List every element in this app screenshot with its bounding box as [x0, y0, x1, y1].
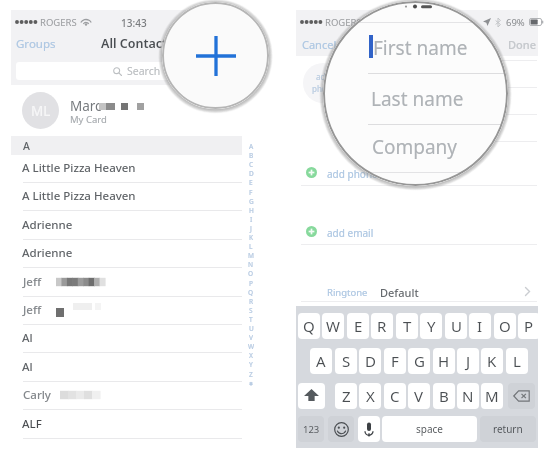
staticText: return	[493, 422, 523, 436]
button[interactable]	[356, 87, 537, 114]
staticText: O	[499, 316, 511, 336]
button[interactable]: H	[433, 348, 455, 374]
staticText: A Little Pizza Heaven	[22, 160, 136, 176]
staticText: L	[249, 242, 253, 251]
button[interactable]: N	[457, 383, 479, 409]
button[interactable]: Alphabet index	[245, 142, 257, 392]
staticText: M	[485, 386, 499, 406]
staticText: Al	[22, 330, 33, 346]
button[interactable]: Q	[298, 313, 320, 339]
staticText: A	[249, 142, 254, 151]
button[interactable]: S	[335, 348, 357, 374]
button[interactable]	[356, 114, 537, 141]
button[interactable]: C	[384, 383, 406, 409]
button[interactable]: U	[445, 313, 467, 339]
staticText: Company	[372, 134, 458, 160]
button[interactable]: Dictation	[358, 416, 380, 442]
button[interactable]: Done	[508, 37, 536, 52]
staticText: O	[248, 269, 254, 278]
button[interactable]: D	[359, 348, 381, 374]
staticText: Default	[380, 285, 419, 300]
button[interactable]: P	[518, 313, 540, 339]
staticText: I	[250, 215, 253, 224]
button[interactable]: 123	[298, 416, 324, 442]
staticText: ALF	[22, 416, 42, 432]
button[interactable]: Jeff	[11, 269, 242, 297]
button[interactable]: return	[480, 416, 536, 442]
staticText: add email	[327, 226, 374, 240]
staticText: J	[250, 224, 252, 233]
button[interactable]: E	[347, 313, 369, 339]
staticText: K	[249, 233, 254, 242]
button[interactable]: X	[359, 383, 381, 409]
button[interactable]: L	[506, 348, 528, 374]
staticText: D	[365, 351, 376, 371]
button[interactable]: Emoji	[328, 416, 354, 442]
button[interactable]: Groups	[16, 36, 56, 52]
staticText: 13:43	[121, 16, 147, 30]
staticText: Q	[303, 316, 315, 336]
button[interactable]: T	[396, 313, 418, 339]
button[interactable]: M	[481, 383, 503, 409]
button[interactable]: Y	[420, 313, 442, 339]
button[interactable]: A Little Pizza Heaven	[11, 183, 242, 211]
button[interactable]: add phone	[296, 163, 538, 185]
staticText: D	[249, 169, 254, 178]
staticText: U	[451, 316, 462, 336]
button[interactable]: Cancel	[302, 37, 337, 52]
button[interactable]: F	[384, 348, 406, 374]
staticText: Marc	[70, 97, 102, 115]
staticText: N	[248, 260, 254, 269]
button[interactable]: A	[310, 348, 332, 374]
staticText: All Contacts	[101, 35, 174, 52]
button[interactable]: add email	[296, 222, 538, 244]
staticText: R	[377, 316, 387, 336]
button[interactable]: Jeff	[11, 297, 242, 325]
button[interactable]: Ringtone	[296, 282, 538, 301]
button[interactable]: Z	[335, 383, 357, 409]
staticText: B	[439, 386, 449, 406]
button[interactable]: add	[303, 63, 343, 103]
button[interactable]: J	[457, 348, 479, 374]
staticText: 69%	[506, 16, 525, 28]
button[interactable]: Al	[11, 354, 242, 382]
staticText: R	[249, 297, 254, 306]
button[interactable]: Search	[16, 62, 237, 80]
button[interactable]	[356, 60, 537, 87]
button[interactable]: V	[408, 383, 430, 409]
staticText: V	[414, 386, 424, 406]
button[interactable]: Carly	[11, 382, 242, 410]
staticText: W	[326, 316, 340, 336]
button[interactable]: G	[408, 348, 430, 374]
staticText: Search	[127, 64, 161, 78]
button[interactable]: Al	[11, 325, 242, 353]
button[interactable]: I	[469, 313, 491, 339]
staticText: Z	[249, 370, 253, 379]
staticText: W	[248, 342, 255, 351]
button[interactable]: Backspace	[508, 383, 535, 409]
staticText: S	[249, 306, 253, 315]
button[interactable]: Adrienne	[11, 240, 242, 268]
button[interactable]: K	[481, 348, 503, 374]
button[interactable]: ML	[11, 85, 242, 136]
staticText: ROGERS	[40, 16, 77, 28]
button[interactable]: W	[322, 313, 344, 339]
button[interactable]: O	[494, 313, 516, 339]
button[interactable]: ALF	[11, 411, 242, 439]
button[interactable]: A Little Pizza Heaven	[11, 155, 242, 183]
button[interactable]: B	[433, 383, 455, 409]
staticText: L	[513, 351, 521, 371]
button[interactable]: space	[382, 416, 477, 442]
button[interactable]: Shift	[298, 383, 325, 409]
staticText: G	[249, 197, 254, 206]
staticText: ROGERS	[325, 16, 362, 28]
button[interactable]: R	[371, 313, 393, 339]
button[interactable]: Adrienne	[11, 212, 242, 240]
staticText: C	[390, 386, 400, 406]
other: Choose ringtone	[525, 287, 530, 296]
staticText: Y	[427, 316, 436, 336]
staticText: A	[23, 139, 30, 153]
staticText: Z	[342, 386, 351, 406]
staticText: Carly	[23, 387, 51, 403]
staticText: Al	[22, 359, 33, 375]
